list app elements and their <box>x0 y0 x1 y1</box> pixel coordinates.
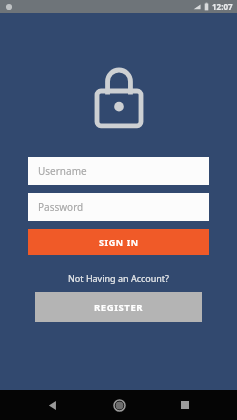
button[interactable]: Back <box>37 390 67 420</box>
button[interactable]: SIGN IN <box>28 229 209 255</box>
button[interactable]: REGISTER <box>35 292 202 322</box>
staticText: REGISTER <box>94 301 144 314</box>
button[interactable]: Home <box>104 390 134 420</box>
staticText: 12:07 <box>212 1 233 12</box>
staticText: Password <box>38 200 84 214</box>
button[interactable]: Username <box>28 157 209 185</box>
staticText: SIGN IN <box>99 236 139 248</box>
staticText: Username <box>38 164 87 178</box>
staticText: Not Having an Account? <box>0 272 237 284</box>
button[interactable]: Recent apps <box>170 390 200 420</box>
button[interactable]: Password <box>28 193 209 221</box>
